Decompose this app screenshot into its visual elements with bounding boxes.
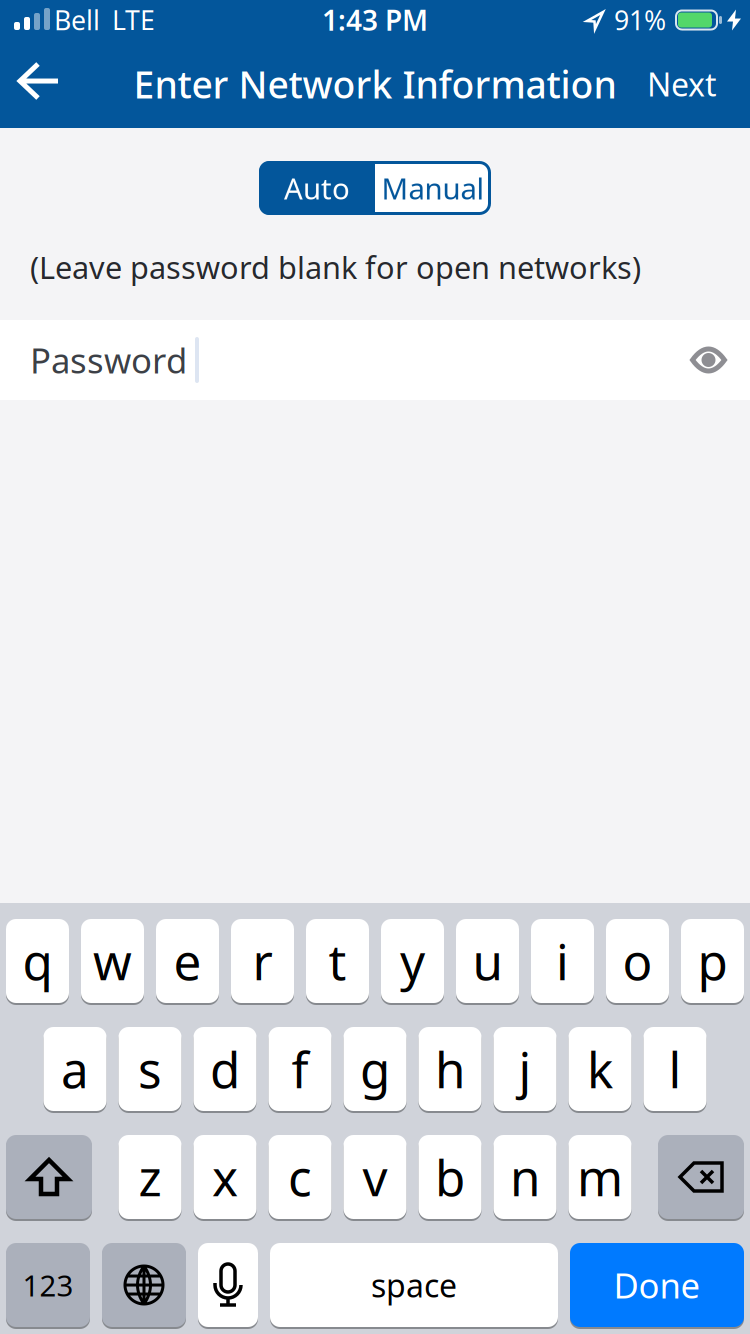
button[interactable]: e [156,919,219,1003]
button[interactable]: k [568,1027,631,1111]
staticText: j [518,1036,531,1102]
staticText: t [328,928,346,994]
button[interactable]: u [456,919,519,1003]
staticText: q [22,928,52,994]
staticText: 123 [22,1265,73,1304]
button[interactable] [658,1135,744,1219]
button[interactable]: m [568,1135,631,1219]
staticText: w [93,928,132,994]
button[interactable] [102,1243,186,1327]
button[interactable]: b [418,1135,481,1219]
staticText: c [288,1144,312,1210]
button[interactable]: d [193,1027,256,1111]
button[interactable]: g [343,1027,406,1111]
staticText: Password [30,337,187,383]
button[interactable]: l [643,1027,706,1111]
button[interactable] [198,1243,258,1327]
staticText: 91% [614,2,666,38]
staticText: Done [613,1262,700,1308]
staticText: Manual [381,168,484,207]
staticText: r [252,928,272,994]
button[interactable] [0,58,60,110]
button[interactable]: f [268,1027,331,1111]
button[interactable]: x [193,1135,256,1219]
staticText: y [400,928,425,994]
staticText: a [61,1036,89,1102]
button[interactable]: Auto [259,161,375,215]
staticText: z [138,1144,161,1210]
staticText: n [510,1144,540,1210]
staticText: v [362,1144,387,1210]
staticText: s [138,1036,162,1102]
button[interactable]: q [6,919,69,1003]
staticText: h [435,1036,465,1102]
button[interactable]: r [231,919,294,1003]
staticText: o [622,928,652,994]
staticText: space [371,1264,457,1306]
button[interactable]: s [118,1027,181,1111]
staticText: f [291,1036,308,1102]
button[interactable]: i [531,919,594,1003]
button[interactable]: h [418,1027,481,1111]
staticText: 1:43 PM [322,1,428,39]
button[interactable]: space [270,1243,558,1327]
button[interactable]: 123 [6,1243,90,1327]
button[interactable] [6,1135,92,1219]
button[interactable]: p [681,919,744,1003]
staticText: Bell [54,2,100,38]
button[interactable]: v [343,1135,406,1219]
button[interactable]: z [118,1135,181,1219]
button[interactable]: Password [0,320,750,400]
button[interactable]: j [493,1027,556,1111]
staticText: k [587,1036,613,1102]
button[interactable]: Done [570,1243,744,1327]
staticText: l [668,1036,681,1102]
button[interactable]: t [306,919,369,1003]
staticText: g [360,1036,390,1102]
button[interactable]: w [81,919,144,1003]
staticText: LTE [112,2,155,38]
staticText: i [556,928,569,994]
button[interactable] [690,346,750,373]
staticText: x [212,1144,238,1210]
staticText: Enter Network Information [133,59,616,109]
staticText: u [472,928,502,994]
staticText: b [435,1144,465,1210]
button[interactable]: a [43,1027,106,1111]
staticText: (Leave password blank for open networks) [30,247,641,287]
staticText: e [173,928,201,994]
staticText: d [210,1036,240,1102]
button[interactable]: n [493,1135,556,1219]
staticText: Next [647,63,717,105]
button[interactable]: o [606,919,669,1003]
button[interactable]: Manual [375,161,491,215]
button[interactable]: Next [647,63,750,105]
staticText: p [697,928,727,994]
button[interactable]: c [268,1135,331,1219]
staticText: m [577,1144,623,1210]
staticText: Auto [284,168,350,207]
button[interactable]: y [381,919,444,1003]
